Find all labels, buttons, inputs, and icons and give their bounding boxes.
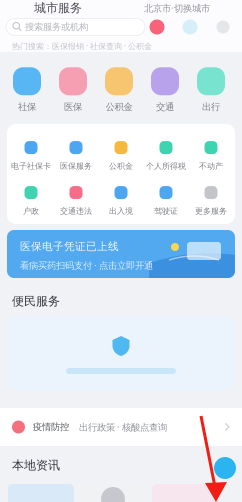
button[interactable]: 户政 (8, 187, 53, 215)
staticText: 交通违法 (60, 206, 92, 216)
button[interactable]: 不动产 (188, 142, 233, 170)
button[interactable]: 公积金 (96, 66, 142, 114)
button[interactable]: 社保 (4, 66, 50, 114)
staticText: 医保服务 (60, 161, 92, 171)
staticText: 个人所得税 (146, 161, 186, 171)
button[interactable]: 医保 (50, 66, 96, 114)
staticText: 便民服务 (12, 294, 60, 309)
staticText: 交通 (156, 101, 174, 113)
button[interactable] (152, 484, 218, 502)
button[interactable]: 更多 (212, 16, 234, 38)
button[interactable]: 更多服务 (188, 187, 233, 215)
button[interactable]: 电子社保卡 (8, 142, 53, 170)
staticText: 医保电子凭证已上线 (20, 240, 119, 253)
staticText: 出行政策 · 核酸点查询 (79, 421, 167, 433)
staticText: 不动产 (199, 161, 223, 171)
staticText: 户政 (23, 206, 39, 216)
button[interactable]: 个人所得税 (143, 142, 188, 170)
staticText: 看病买药扫码支付 · 点击立即开通 (20, 259, 153, 271)
staticText: 公积金 (105, 101, 132, 113)
button[interactable]: 搜索服务或机构 (6, 18, 145, 35)
staticText: 城市服务 (34, 1, 82, 15)
button[interactable]: 出入境 (98, 187, 143, 215)
staticText: 医保 (64, 101, 82, 113)
button[interactable]: 客服帮助 (179, 16, 201, 38)
staticText: 驾驶证 (154, 206, 178, 216)
button[interactable]: 驾驶证 (143, 187, 188, 215)
button[interactable]: 公积金 (98, 142, 143, 170)
staticText: 出行 (202, 101, 220, 113)
button[interactable]: 医保服务 (53, 142, 98, 170)
button[interactable] (8, 316, 234, 390)
staticText: 电子社保卡 (11, 161, 51, 171)
button[interactable] (80, 484, 146, 502)
staticText: 更多服务 (195, 206, 227, 216)
staticText: 搜索服务或机构 (25, 21, 88, 33)
button[interactable]: 交通 (142, 66, 188, 114)
button[interactable]: 医保电子凭证已上线 (7, 230, 235, 278)
staticText: 公积金 (109, 161, 133, 171)
staticText: 热门搜索：医保报销 · 社保查询 · 公积金 (12, 41, 152, 51)
button[interactable]: 疫情防控 (0, 408, 242, 446)
staticText: 疫情防控 (33, 421, 69, 433)
staticText: 本地资讯 (12, 458, 60, 473)
button[interactable]: 领取红包 (146, 16, 168, 38)
staticText: 出入境 (109, 206, 133, 216)
button[interactable]: 出行 (188, 66, 234, 114)
staticText: 社保 (18, 101, 36, 113)
button[interactable]: 交通违法 (53, 187, 98, 215)
staticText: 北京市·切换城市 (144, 2, 210, 14)
